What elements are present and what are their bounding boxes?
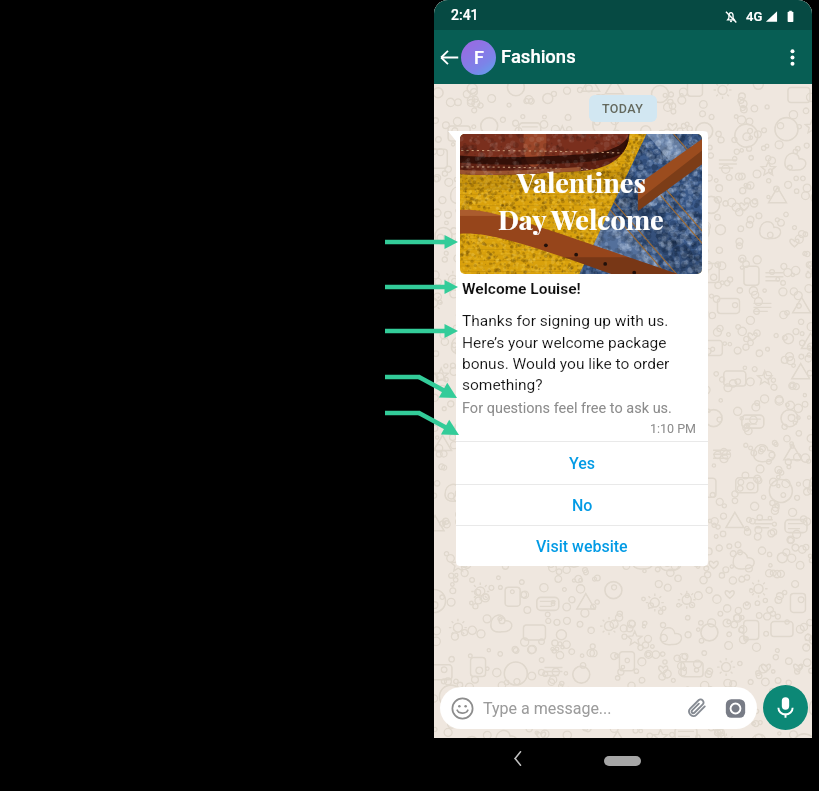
button[interactable]: Voice message [763, 685, 808, 730]
button[interactable]: Profile photo [461, 40, 496, 75]
button[interactable]: Fashions [501, 46, 772, 68]
staticText: No [572, 496, 593, 515]
staticText: TODAY [602, 101, 644, 116]
staticText: For questions feel free to ask us. [462, 400, 672, 417]
staticText: Day Welcome [498, 201, 664, 237]
button[interactable]: TODAY [602, 101, 644, 116]
staticText: 2:41 [451, 7, 479, 23]
staticText: Valentines [517, 164, 646, 200]
button[interactable]: Visit website [456, 526, 708, 566]
staticText: Type a message... [483, 699, 681, 718]
button[interactable]: Home [604, 756, 641, 766]
staticText: Visit website [536, 537, 628, 556]
staticText: Welcome Louise! [462, 280, 581, 298]
staticText: F [474, 47, 484, 68]
staticText: Yes [569, 454, 596, 473]
staticText: 4G [746, 9, 763, 24]
button[interactable]: Attach [681, 692, 713, 724]
staticText: 1:10 PM [650, 421, 697, 436]
button[interactable]: Yes [456, 442, 708, 484]
button[interactable]: Back [498, 738, 538, 778]
button[interactable]: Camera [719, 692, 751, 724]
button[interactable]: Type a message... [440, 687, 757, 729]
button[interactable]: More options [772, 31, 812, 84]
staticText: Thanks for signing up with us. Here’s yo… [462, 312, 697, 393]
button[interactable]: Back [437, 31, 461, 84]
button[interactable]: No [456, 485, 708, 525]
